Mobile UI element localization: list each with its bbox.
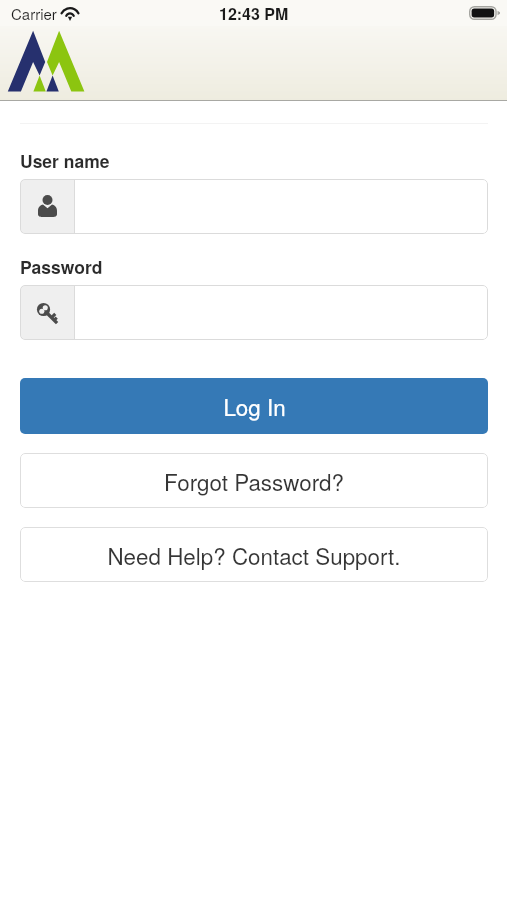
staticText: Forgot Password? [164, 465, 344, 497]
button[interactable]: Log In [20, 378, 488, 434]
staticText: User name [20, 148, 110, 173]
staticText: 12:43 PM [219, 2, 289, 25]
button[interactable]: Password input [20, 285, 488, 340]
staticText: Carrier [11, 3, 57, 24]
button[interactable]: User name input [20, 179, 488, 234]
button[interactable]: Forgot Password? [20, 453, 488, 508]
staticText: Need Help? Contact Support. [107, 539, 401, 571]
staticText: Password [20, 254, 103, 279]
staticText: Log In [223, 390, 286, 422]
button[interactable]: Need Help? Contact Support. [20, 527, 488, 582]
